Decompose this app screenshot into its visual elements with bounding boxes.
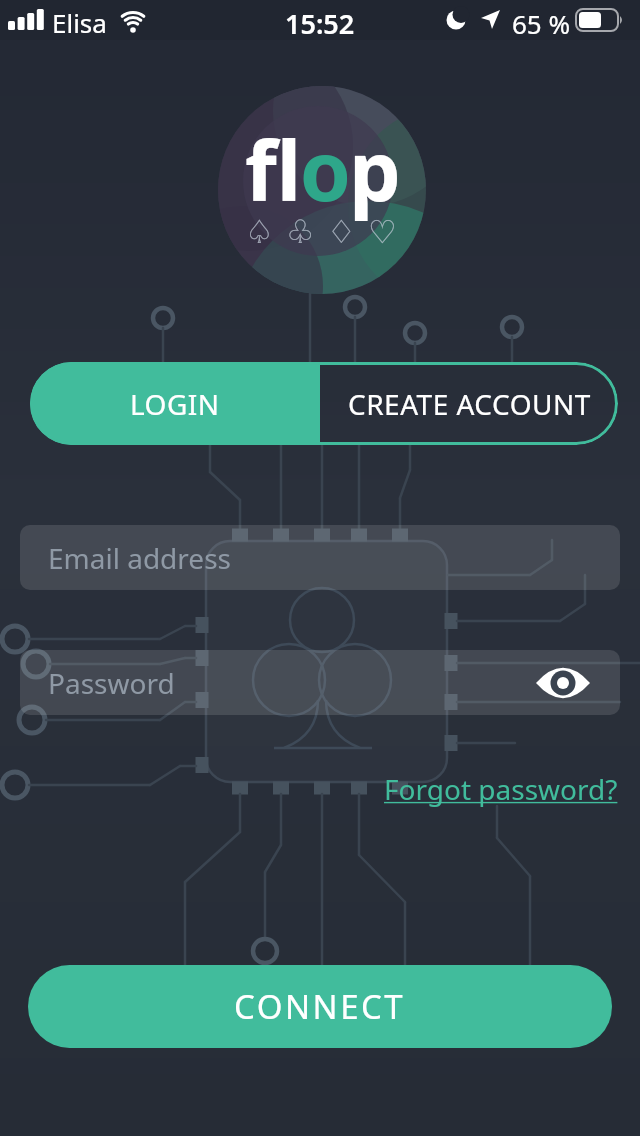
staticText: CONNECT <box>234 984 406 1029</box>
staticText: 65 % <box>512 6 571 41</box>
staticText: 15:52 <box>285 5 355 42</box>
staticText: CREATE ACCOUNT <box>348 385 591 423</box>
staticText: flop <box>245 113 399 225</box>
staticText: Elisa <box>52 5 107 40</box>
button[interactable]: Forgot password? <box>384 770 618 808</box>
staticText: LOGIN <box>130 385 220 423</box>
button[interactable]: Password <box>20 650 620 715</box>
staticText: Password <box>48 664 175 702</box>
staticText: ♤ ♧ ♢ ♡ <box>245 209 399 253</box>
button[interactable]: LOGIN <box>30 362 320 445</box>
button[interactable]: CREATE ACCOUNT <box>320 362 618 445</box>
staticText: Email address <box>48 539 231 577</box>
button[interactable]: Email address <box>20 525 620 590</box>
staticText: Forgot password? <box>384 770 618 808</box>
button[interactable]: CONNECT <box>28 965 612 1048</box>
